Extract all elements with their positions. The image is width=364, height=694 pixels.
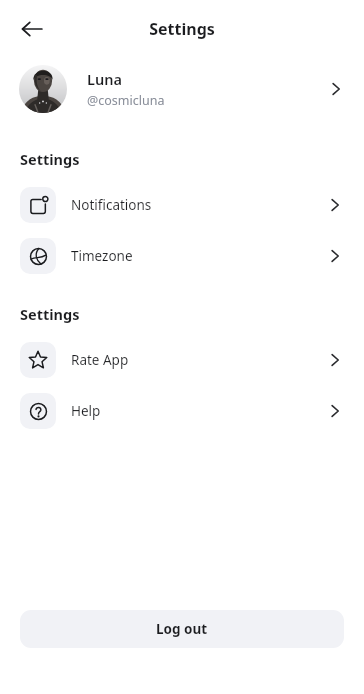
staticText: Help [71, 402, 326, 420]
staticText: Log out [156, 620, 208, 638]
staticText: Notifications [71, 196, 326, 214]
button[interactable]: Notifications [0, 179, 364, 230]
button[interactable]: Log out [20, 610, 344, 648]
staticText: Timezone [71, 247, 326, 265]
staticText: Luna [87, 69, 122, 89]
button[interactable]: Timezone [0, 230, 364, 281]
staticText: Rate App [71, 351, 326, 369]
staticText: Settings [20, 149, 80, 169]
staticText: Settings [149, 18, 215, 40]
button[interactable]: Back [12, 9, 52, 49]
staticText: @cosmicluna [87, 92, 165, 109]
staticText: Settings [20, 304, 80, 324]
button[interactable]: Rate App [0, 334, 364, 385]
button[interactable]: Help [0, 385, 364, 436]
button[interactable]: Luna [0, 58, 364, 120]
